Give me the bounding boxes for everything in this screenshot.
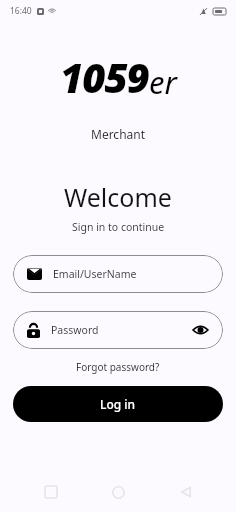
staticText: Password — [51, 323, 99, 337]
staticText: Sign in to continue — [72, 220, 165, 234]
staticText: er — [149, 61, 177, 103]
staticText: Forgot password? — [76, 360, 160, 374]
staticText: Email/UserName — [53, 267, 137, 281]
staticText: Merchant — [91, 126, 146, 142]
other: Email — [27, 268, 42, 280]
button[interactable]: Recent apps — [34, 475, 68, 509]
staticText: 16:40 — [10, 5, 32, 17]
button[interactable]: Log in — [13, 386, 223, 422]
staticText: Log in — [100, 396, 136, 412]
other: Password — [27, 323, 40, 338]
staticText: Welcome — [64, 180, 172, 214]
button[interactable]: Home — [101, 475, 135, 509]
button[interactable]: Email — [13, 255, 223, 293]
button[interactable]: Forgot password? — [72, 358, 164, 376]
staticText: 1059 — [60, 50, 149, 104]
button[interactable]: Password — [13, 311, 223, 349]
button[interactable]: Show password — [191, 321, 209, 339]
button[interactable]: Back — [169, 475, 203, 509]
